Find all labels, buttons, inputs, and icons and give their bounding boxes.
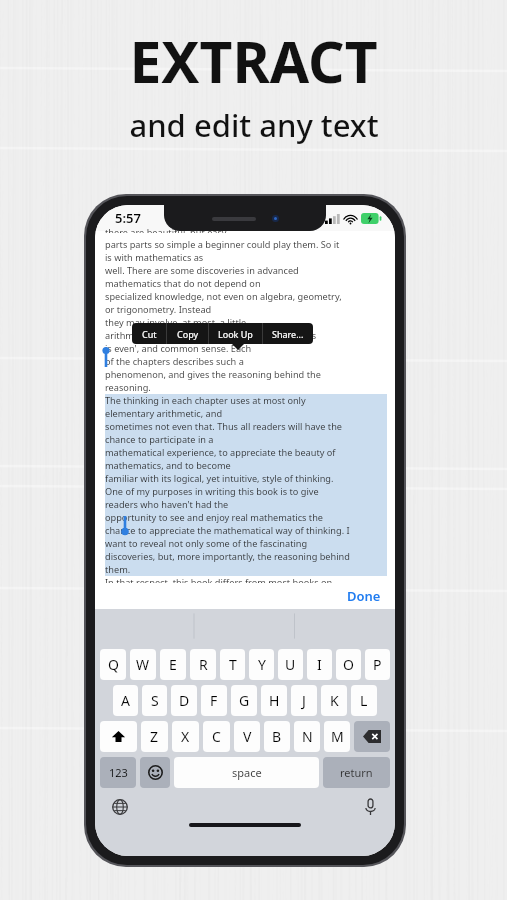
button[interactable]: return xyxy=(323,757,390,788)
staticText: mathematics, and to become xyxy=(105,459,231,472)
button[interactable]: N xyxy=(294,721,320,752)
staticText: S xyxy=(151,691,159,710)
staticText: The thinking in each chapter uses at mos… xyxy=(105,394,306,407)
staticText: 5:57 xyxy=(115,209,141,227)
staticText: EXTRACT xyxy=(129,22,378,100)
staticText: G xyxy=(239,691,250,710)
staticText: V xyxy=(243,727,252,746)
staticText: space xyxy=(232,765,262,780)
button[interactable]: Q xyxy=(100,649,126,680)
staticText: Z xyxy=(150,727,159,746)
staticText: M xyxy=(331,727,344,746)
staticText: Look Up xyxy=(218,328,253,340)
button[interactable]: Emoji xyxy=(140,757,170,788)
staticText: C xyxy=(212,727,221,746)
button[interactable]: P xyxy=(365,649,390,680)
button[interactable]: 123 xyxy=(100,757,136,788)
button[interactable]: Shift xyxy=(100,721,137,752)
button[interactable]: Switch keyboard language xyxy=(109,796,131,818)
staticText: W xyxy=(136,655,150,674)
staticText: they may involve, at most, a little xyxy=(105,316,247,329)
button[interactable]: space xyxy=(174,757,319,788)
button[interactable]: U xyxy=(278,649,303,680)
button[interactable]: D xyxy=(171,685,197,716)
staticText: R xyxy=(199,655,208,674)
button[interactable]: O xyxy=(336,649,361,680)
staticText: E xyxy=(169,655,177,674)
staticText: Share... xyxy=(272,328,304,340)
button[interactable]: B xyxy=(264,721,290,752)
staticText: specialized knowledge, not even on algeb… xyxy=(105,290,342,303)
staticText: discoveries, but, more importantly, the … xyxy=(105,550,350,563)
button[interactable]: G xyxy=(231,685,257,716)
staticText: well. There are some discoveries in adva… xyxy=(105,264,299,277)
button[interactable]: Look Up xyxy=(209,323,262,344)
staticText: A xyxy=(121,691,130,710)
staticText: Y xyxy=(258,655,266,674)
staticText: want to reveal not only some of the fasc… xyxy=(105,537,308,550)
staticText: Copy xyxy=(177,328,199,340)
staticText: X xyxy=(181,727,190,746)
button[interactable]: L xyxy=(351,685,377,716)
button[interactable]: V xyxy=(234,721,260,752)
staticText: elementary arithmetic, and xyxy=(105,407,223,420)
button[interactable]: K xyxy=(321,685,347,716)
staticText: 123 xyxy=(109,765,128,780)
button[interactable]: Y xyxy=(249,649,274,680)
staticText: In that respect, this book differs from … xyxy=(105,576,333,583)
staticText: opportunity to see and enjoy real mathem… xyxy=(105,511,324,524)
button[interactable]: R xyxy=(190,649,216,680)
button[interactable]: H xyxy=(261,685,287,716)
staticText: or trigonometry. Instead xyxy=(105,303,212,316)
button[interactable]: C xyxy=(203,721,230,752)
staticText: D xyxy=(179,691,190,710)
staticText: J xyxy=(302,691,306,710)
staticText: is even', and common sense. Each xyxy=(105,342,252,355)
staticText: familiar with its logical, yet intuitive… xyxy=(105,472,334,485)
button[interactable]: T xyxy=(220,649,245,680)
button[interactable]: F xyxy=(201,685,227,716)
staticText: T xyxy=(229,655,237,674)
button[interactable]: Dictate xyxy=(359,796,381,818)
button[interactable]: S xyxy=(142,685,167,716)
staticText: is with mathematics as xyxy=(105,251,204,264)
staticText: mathematics that do not depend on xyxy=(105,277,261,290)
staticText: chance to appreciate the mathematical wa… xyxy=(105,524,350,537)
staticText: and edit any text xyxy=(129,104,379,146)
staticText: there are beautiful, but easy xyxy=(105,226,227,233)
staticText: mathematical experience, to appreciate t… xyxy=(105,446,336,459)
button[interactable]: E xyxy=(160,649,186,680)
button[interactable]: X xyxy=(172,721,199,752)
staticText: them. xyxy=(105,563,131,576)
button[interactable]: Share... xyxy=(263,323,313,344)
staticText: Cut xyxy=(142,328,157,340)
button[interactable]: I xyxy=(307,649,332,680)
button[interactable]: Done xyxy=(341,584,387,608)
staticText: reasoning. xyxy=(105,381,151,394)
staticText: H xyxy=(269,691,280,710)
staticText: arithmetic, such as 'the sum of two odd … xyxy=(105,329,317,342)
button[interactable]: Z xyxy=(141,721,168,752)
staticText: B xyxy=(272,727,282,746)
staticText: N xyxy=(302,727,313,746)
button[interactable]: J xyxy=(291,685,317,716)
staticText: L xyxy=(360,691,368,710)
staticText: K xyxy=(330,691,339,710)
staticText: F xyxy=(210,691,218,710)
button[interactable]: Cut xyxy=(132,323,166,344)
staticText: sometimes not even that. Thus all reader… xyxy=(105,420,343,433)
button[interactable]: Backspace xyxy=(354,721,390,752)
button[interactable]: M xyxy=(324,721,350,752)
staticText: P xyxy=(373,655,382,674)
staticText: of the chapters describes such a xyxy=(105,355,244,368)
staticText: return xyxy=(340,765,373,780)
staticText: chance to participate in a xyxy=(105,433,214,446)
button[interactable]: Copy xyxy=(167,323,208,344)
staticText: One of my purposes in writing this book … xyxy=(105,485,319,498)
staticText: U xyxy=(285,655,296,674)
button[interactable]: A xyxy=(113,685,138,716)
staticText: I xyxy=(317,655,322,674)
button[interactable]: W xyxy=(130,649,156,680)
staticText: phenomenon, and gives the reasoning behi… xyxy=(105,368,321,381)
staticText: Done xyxy=(347,587,381,605)
